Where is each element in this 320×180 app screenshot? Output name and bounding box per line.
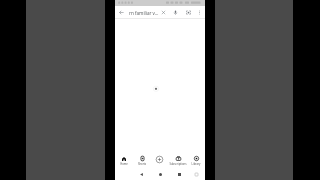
staticText: rn familiar v…: [129, 10, 159, 16]
button[interactable]: Google Lens: [184, 8, 192, 16]
button[interactable]: Shorts: [133, 154, 151, 165]
button[interactable]: Back: [136, 169, 146, 179]
button[interactable]: Back: [117, 8, 125, 16]
staticText: Home: [115, 162, 133, 166]
button[interactable]: Home: [115, 154, 133, 165]
staticText: Library: [187, 162, 205, 166]
button[interactable]: Create: [155, 155, 164, 164]
staticText: Subscriptions: [169, 162, 187, 166]
button[interactable]: Recents: [174, 169, 184, 179]
staticText: Shorts: [133, 162, 151, 166]
button[interactable]: Clear: [159, 8, 167, 16]
button[interactable]: More options: [195, 8, 203, 16]
button[interactable]: Voice search: [171, 8, 179, 16]
button[interactable]: Subscriptions: [169, 154, 187, 165]
button[interactable]: Library: [187, 154, 205, 165]
button[interactable]: Screenshot: [191, 169, 201, 179]
button[interactable]: Home: [155, 169, 165, 179]
